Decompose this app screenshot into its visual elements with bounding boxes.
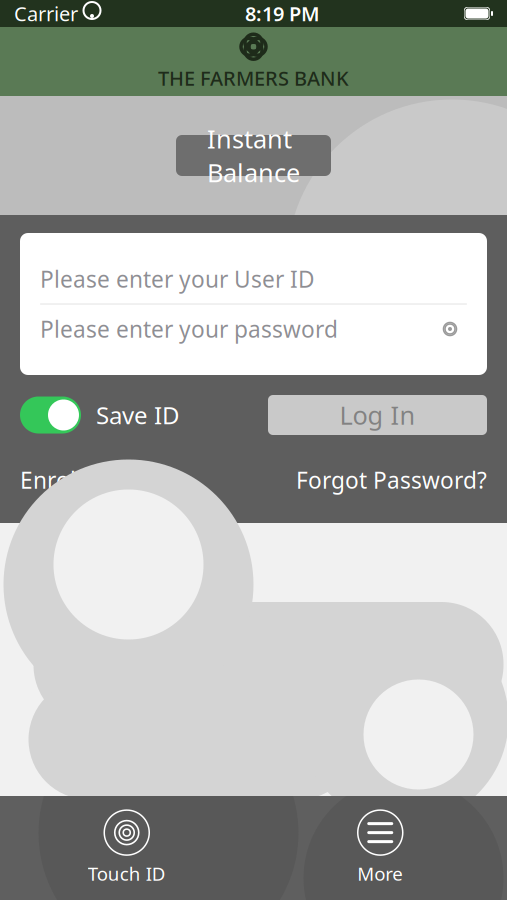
staticText: Touch ID — [88, 861, 166, 886]
button[interactable]: Log In — [268, 395, 487, 435]
button[interactable]: Forgot Password? — [296, 465, 487, 495]
staticText: Forgot Password? — [296, 465, 487, 495]
button[interactable]: Save ID — [20, 396, 180, 433]
staticText: Enroll now — [20, 465, 133, 495]
staticText: 8:19 PM — [245, 0, 320, 27]
button[interactable]: Touch ID — [72, 805, 182, 891]
staticText: THE FARMERS BANK — [158, 65, 349, 91]
button[interactable]: Instant Balance — [176, 135, 331, 176]
button[interactable]: Show password — [433, 312, 467, 346]
staticText: Please enter your password — [40, 314, 338, 344]
staticText: Save ID — [96, 399, 180, 431]
button[interactable]: Enroll now — [20, 465, 133, 495]
staticText: More — [357, 861, 403, 886]
staticText: Instant Balance — [207, 122, 300, 189]
staticText: Carrier — [14, 0, 78, 27]
button[interactable]: More — [325, 805, 435, 891]
staticText: Please enter your User ID — [40, 264, 315, 294]
staticText: Log In — [339, 398, 415, 432]
